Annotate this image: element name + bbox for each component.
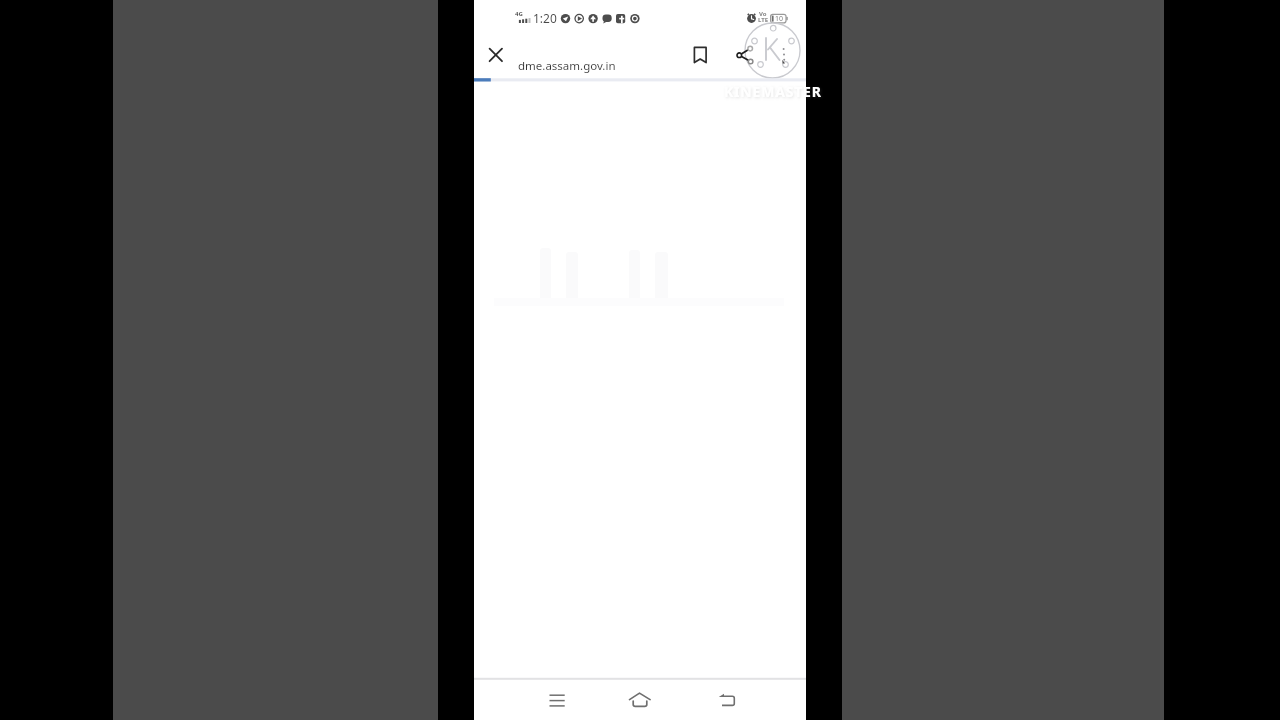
staticText: LTE <box>758 16 769 24</box>
staticText: Vo <box>759 10 767 18</box>
button[interactable] <box>703 683 751 719</box>
staticText: dme.assam.gov.in <box>518 58 616 74</box>
button[interactable] <box>686 41 714 69</box>
staticText: KINEMASTER <box>724 82 822 101</box>
button[interactable]: dme.assam.gov.in <box>514 54 694 78</box>
button[interactable] <box>730 41 760 69</box>
button[interactable] <box>533 683 581 719</box>
button[interactable] <box>482 41 510 69</box>
staticText: 10 <box>775 14 784 24</box>
button[interactable] <box>615 683 663 719</box>
staticText: 4G <box>515 10 523 18</box>
staticText: 1:20 <box>533 10 557 26</box>
